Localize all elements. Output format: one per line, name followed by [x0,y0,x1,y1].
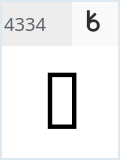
staticText: 4334 [4,11,47,36]
button[interactable]: 4334 [2,2,72,46]
button[interactable]: More options [83,7,105,35]
